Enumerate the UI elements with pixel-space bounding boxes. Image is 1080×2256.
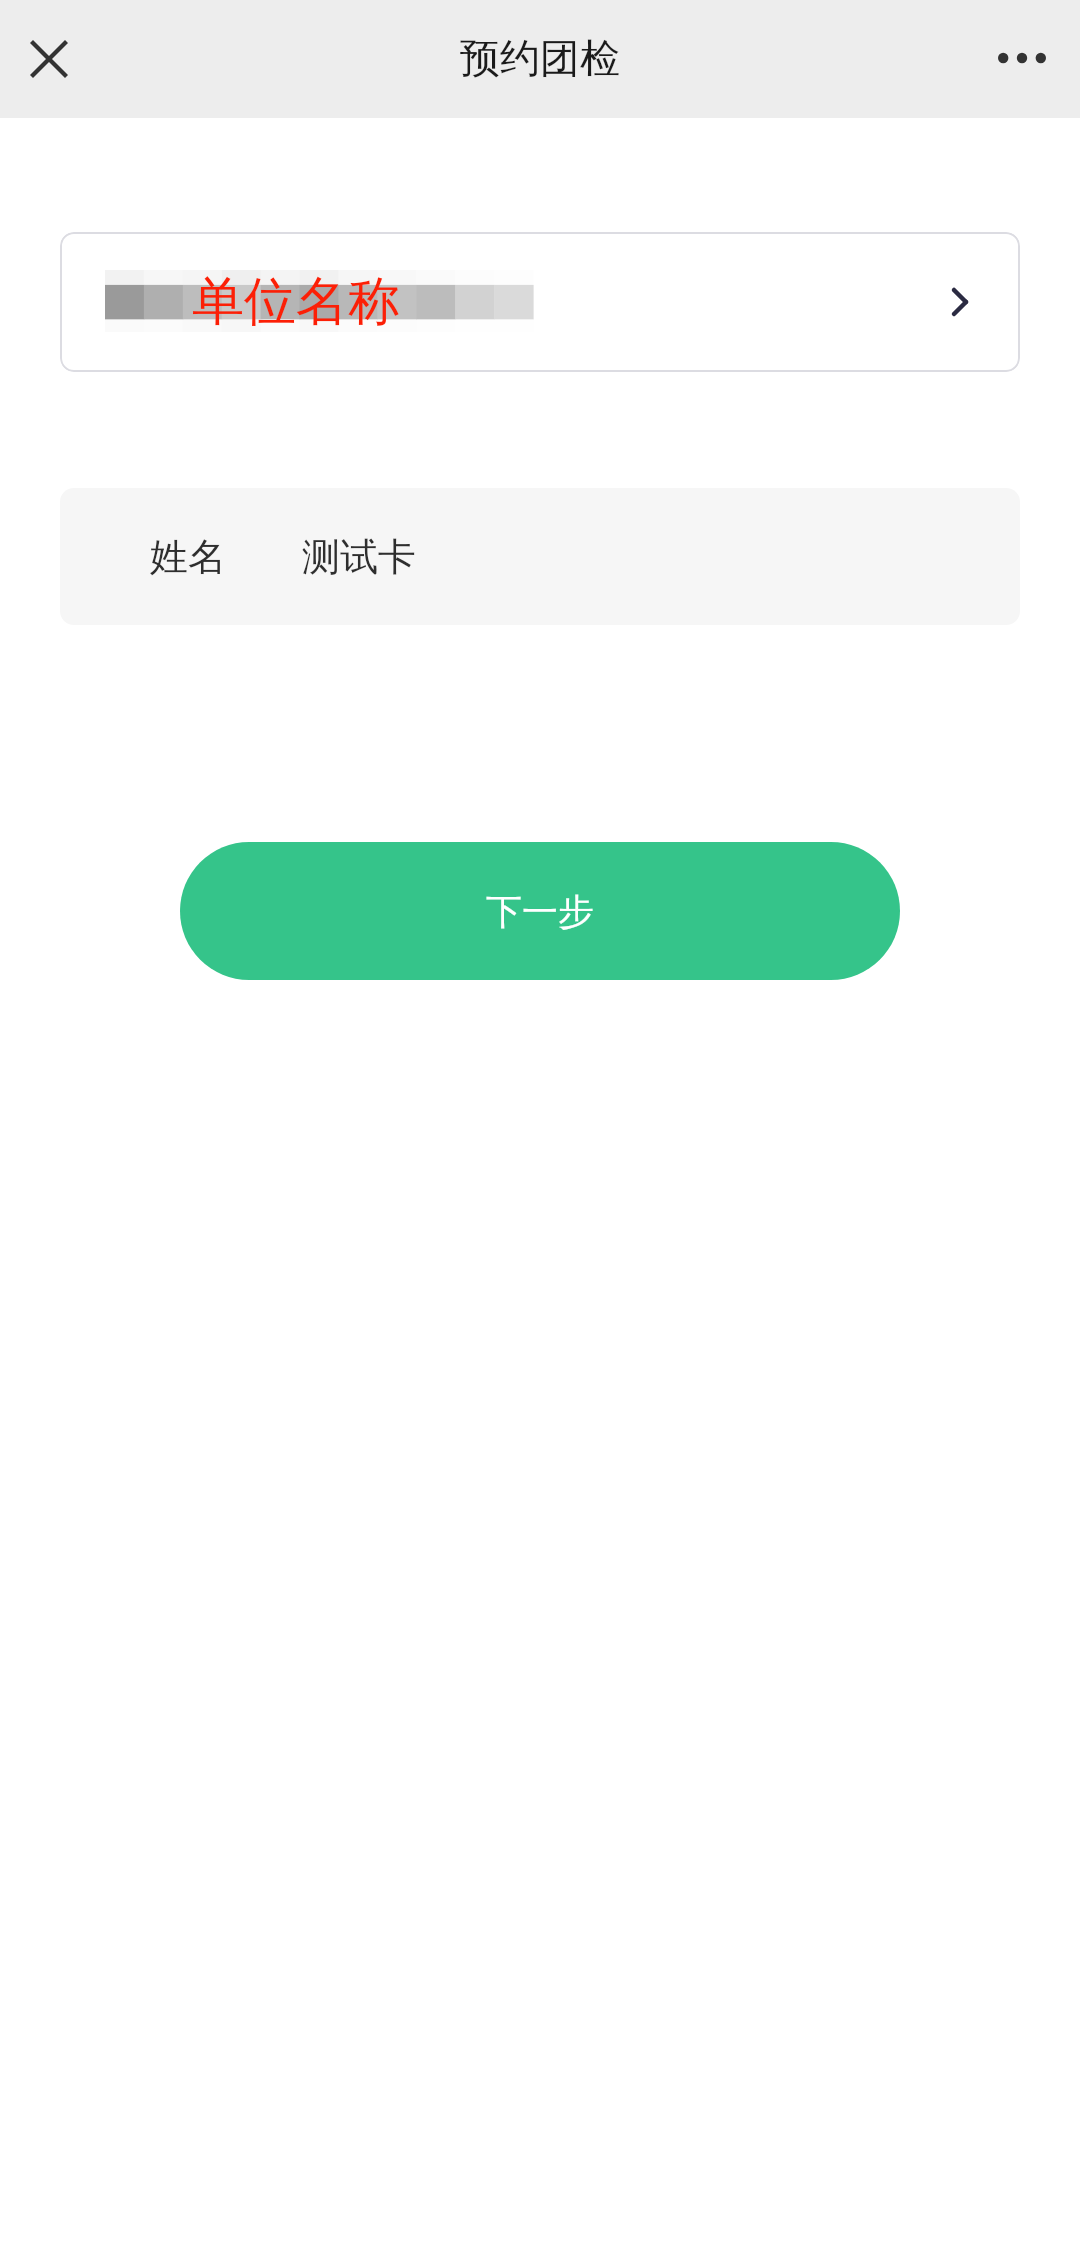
staticText: 单位名称	[192, 269, 400, 335]
staticText: 姓名	[150, 533, 226, 581]
staticText: 测试卡	[302, 533, 416, 581]
staticText: 下一步	[486, 889, 594, 934]
button[interactable]: 姓名	[60, 488, 1020, 625]
button[interactable]: More options	[986, 22, 1058, 94]
button[interactable]: 下一步	[180, 842, 900, 980]
button[interactable]: Select company	[928, 270, 992, 334]
button[interactable]: Close	[15, 25, 83, 93]
staticText: 预约团检	[460, 33, 620, 83]
button[interactable]: 单位名称	[60, 232, 1020, 372]
